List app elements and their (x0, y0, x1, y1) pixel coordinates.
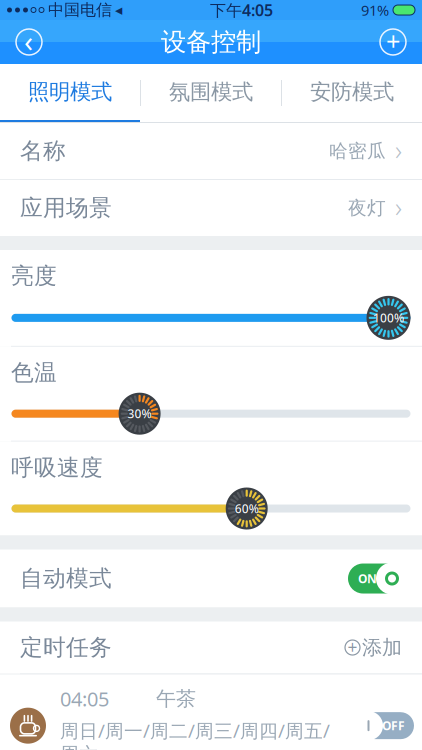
staticText: 夜灯 (348, 196, 386, 219)
staticText: 呼吸速度 (11, 454, 103, 481)
staticText: 哈密瓜 (329, 139, 386, 162)
staticText: 应用场景 (20, 194, 112, 222)
staticText: OFF (382, 718, 405, 734)
button[interactable]: 安防模式 (282, 64, 422, 122)
staticText: 亮度 (11, 262, 57, 290)
button[interactable]: 照明模式 (0, 64, 140, 122)
staticText: + (347, 635, 357, 658)
button[interactable]: 04:05 (0, 674, 422, 750)
staticText: 04:05 (60, 685, 109, 712)
staticText: 91% (361, 0, 389, 20)
staticText: 添加 (362, 635, 402, 660)
staticText: 氛围模式 (169, 79, 253, 105)
staticText: 午茶 (156, 686, 196, 711)
button[interactable]: 定时任务开关 (354, 710, 414, 741)
staticText: 下午4:05 (210, 0, 273, 21)
button[interactable]: 名称 (0, 123, 422, 179)
staticText: 定时任务 (20, 634, 112, 661)
staticText: 自动模式 (20, 565, 112, 592)
button[interactable]: Add (371, 20, 415, 64)
button[interactable]: Back (7, 20, 51, 64)
button[interactable]: + (345, 627, 402, 668)
staticText: ON (358, 571, 377, 586)
button[interactable]: 应用场景 (0, 180, 422, 236)
button[interactable]: 自动模式 (346, 561, 408, 595)
staticText: 30% (128, 406, 152, 422)
staticText: 色温 (11, 359, 57, 387)
staticText: ◂ (115, 2, 122, 18)
staticText: 照明模式 (28, 79, 112, 105)
staticText: 名称 (20, 137, 66, 165)
staticText: › (395, 189, 402, 225)
staticText: 设备控制 (161, 26, 261, 57)
staticText: + (386, 24, 400, 58)
staticText: 100% (373, 310, 404, 326)
button[interactable]: 氛围模式 (141, 64, 281, 122)
staticText: 安防模式 (310, 79, 394, 105)
staticText: 周日/周一/周二/周三/周四/周五/周六 (60, 718, 330, 750)
staticText: 中国电信 (48, 0, 112, 20)
staticText: 60% (235, 501, 259, 516)
staticText: › (395, 132, 402, 168)
staticText: ‹ (24, 21, 33, 60)
